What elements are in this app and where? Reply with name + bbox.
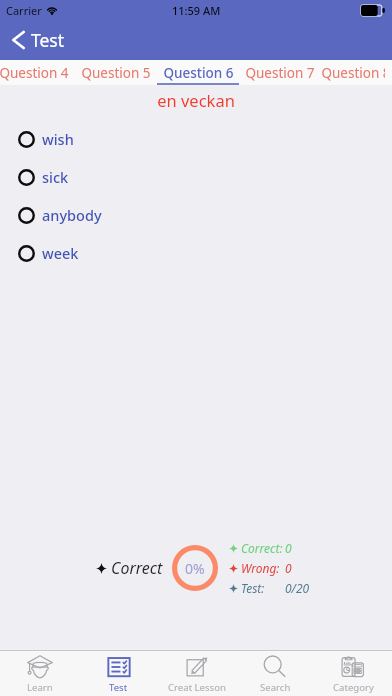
staticText: Correct [111, 557, 163, 579]
button[interactable]: Learn [0, 651, 79, 696]
staticText: Question 8 [321, 64, 385, 82]
button[interactable]: Question 4 [0, 60, 75, 85]
staticText: Question 6 [163, 64, 234, 82]
staticText: 0% [185, 559, 205, 578]
staticText: Test: [241, 580, 265, 596]
staticText: Test [109, 681, 128, 694]
button[interactable]: Question 8 [321, 60, 385, 85]
staticText: 0 [285, 560, 292, 576]
staticText: Learn [27, 681, 53, 694]
staticText: Creat Lesson [168, 681, 226, 694]
button[interactable]: Question 7 [239, 60, 321, 85]
button[interactable]: week [0, 234, 392, 272]
staticText: Correct: [241, 540, 283, 556]
button[interactable]: Creat Lesson [158, 651, 236, 696]
staticText: Question 7 [245, 64, 315, 82]
staticText: 11:59 AM [172, 3, 221, 18]
staticText: Search [260, 681, 291, 694]
button[interactable]: Back to Test [0, 28, 75, 52]
button[interactable]: sick [0, 158, 392, 196]
staticText: en veckan [0, 89, 392, 111]
staticText: wish [42, 129, 74, 149]
staticText: 0/20 [285, 580, 310, 596]
button[interactable]: Test [79, 651, 158, 696]
staticText: Wrong: [241, 560, 280, 576]
staticText: Test [31, 28, 65, 52]
staticText: sick [42, 167, 69, 187]
button[interactable]: anybody [0, 196, 392, 234]
staticText: Question 5 [81, 64, 151, 82]
staticText: Question 4 [0, 64, 69, 82]
staticText: anybody [42, 205, 102, 225]
staticText: Category [333, 681, 374, 694]
button[interactable]: Category [314, 651, 392, 696]
staticText: Carrier [6, 3, 42, 18]
button[interactable]: Search [236, 651, 314, 696]
button[interactable]: wish [0, 120, 392, 158]
staticText: 0 [285, 540, 292, 556]
staticText: week [42, 243, 79, 263]
button[interactable]: Question 6 [157, 60, 239, 85]
button[interactable]: Question 5 [75, 60, 157, 85]
